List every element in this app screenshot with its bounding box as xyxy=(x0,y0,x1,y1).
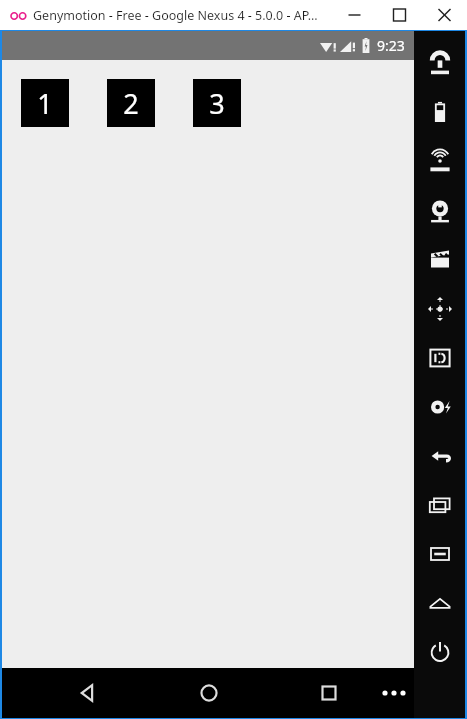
staticText: 3 xyxy=(209,85,225,122)
button[interactable]: Close xyxy=(422,0,467,30)
button[interactable]: Back xyxy=(67,668,111,718)
button[interactable]: Accelerometer xyxy=(414,284,465,333)
button[interactable]: Battery xyxy=(414,88,465,137)
button[interactable]: Maximize xyxy=(377,0,422,30)
button[interactable]: Recents xyxy=(307,668,351,718)
button[interactable]: Home xyxy=(414,578,465,627)
button[interactable]: Back xyxy=(414,431,465,480)
button[interactable]: 1 xyxy=(21,79,69,127)
button[interactable]: Recent apps xyxy=(414,480,465,529)
button[interactable]: Menu xyxy=(414,529,465,578)
button[interactable]: GAPPS xyxy=(414,39,465,88)
button[interactable]: More options xyxy=(372,668,416,718)
staticText: 1 xyxy=(37,85,53,122)
button[interactable]: Identifiers xyxy=(414,333,465,382)
staticText: 9:23 xyxy=(377,36,405,55)
staticText: Genymotion - Free - Google Nexus 4 - 5.0… xyxy=(33,7,318,24)
button[interactable]: Power xyxy=(414,627,465,676)
button[interactable]: GPS xyxy=(414,137,465,186)
button[interactable]: Home xyxy=(187,668,231,718)
button[interactable]: Disk IO xyxy=(414,382,465,431)
button[interactable]: Camera xyxy=(414,186,465,235)
staticText: 2 xyxy=(123,85,139,122)
button[interactable]: Screen recorder xyxy=(414,235,465,284)
button[interactable]: Minimize xyxy=(332,0,377,30)
button[interactable]: 3 xyxy=(193,79,241,127)
button[interactable]: 2 xyxy=(107,79,155,127)
